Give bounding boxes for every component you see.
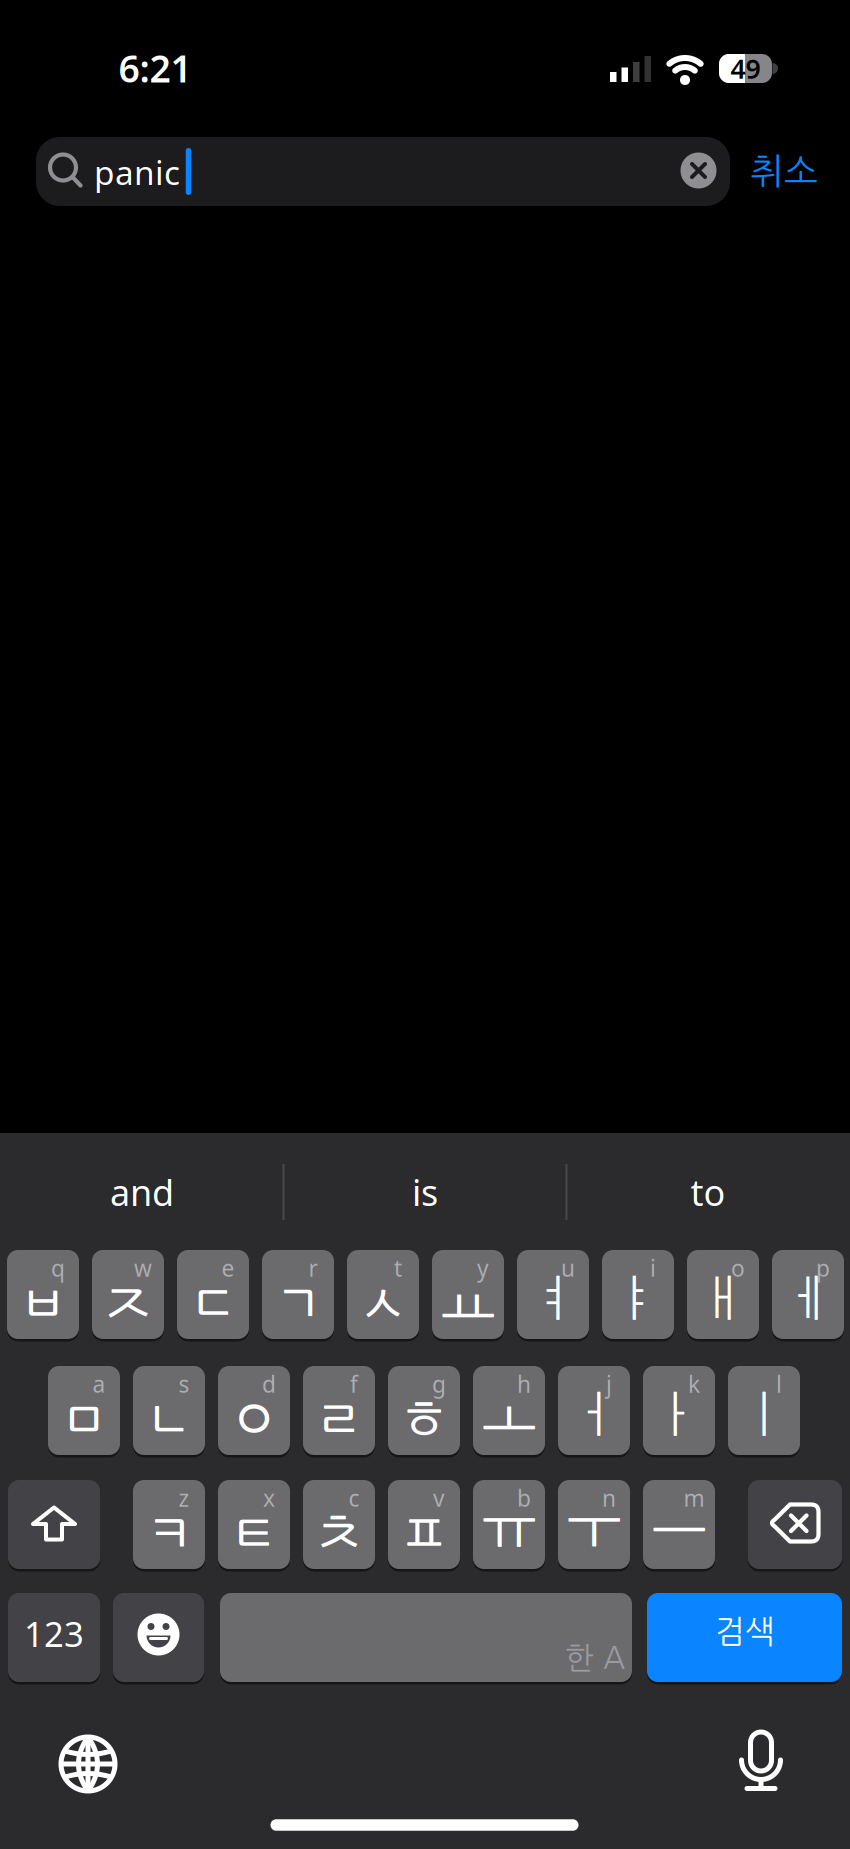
- button[interactable]: ㅎ: [388, 1366, 460, 1455]
- staticText: o: [731, 1253, 745, 1283]
- staticText: u: [561, 1253, 575, 1283]
- staticText: ㅍ: [396, 1502, 452, 1562]
- button[interactable]: ㅓ: [558, 1366, 630, 1455]
- staticText: ㅡ: [651, 1497, 707, 1557]
- staticText: 검색: [714, 1615, 774, 1647]
- button[interactable]: ㅗ: [473, 1366, 545, 1455]
- staticText: ㅠ: [481, 1495, 537, 1555]
- staticText: 한 A: [565, 1643, 625, 1673]
- button[interactable]: Shift: [8, 1480, 100, 1569]
- button[interactable]: is: [290, 1152, 560, 1232]
- staticText: ㅔ: [785, 1274, 830, 1322]
- staticText: ㅂ: [15, 1272, 71, 1332]
- staticText: ㅗ: [481, 1384, 537, 1444]
- staticText: m: [683, 1483, 704, 1513]
- button[interactable]: ㅐ: [687, 1250, 759, 1339]
- button[interactable]: ㅇ: [218, 1366, 290, 1455]
- button[interactable]: ㅏ: [643, 1366, 715, 1455]
- button[interactable]: and: [7, 1152, 277, 1232]
- staticText: q: [51, 1253, 65, 1283]
- staticText: panic: [94, 150, 180, 194]
- staticText: ㅣ: [741, 1390, 786, 1438]
- staticText: ㅏ: [656, 1390, 701, 1438]
- staticText: k: [688, 1369, 700, 1399]
- button[interactable]: ㄴ: [133, 1366, 205, 1455]
- staticText: ㄴ: [141, 1388, 197, 1448]
- button[interactable]: ㅈ: [92, 1250, 164, 1339]
- staticText: l: [776, 1369, 782, 1399]
- button[interactable]: ㅍ: [388, 1480, 460, 1569]
- button[interactable]: ㄱ: [262, 1250, 334, 1339]
- button[interactable]: Emoji: [113, 1593, 204, 1682]
- staticText: ㅅ: [355, 1272, 411, 1332]
- staticText: i: [650, 1253, 656, 1283]
- staticText: ㅎ: [396, 1388, 452, 1448]
- staticText: d: [262, 1369, 276, 1399]
- staticText: ㅈ: [100, 1272, 156, 1332]
- button[interactable]: ㅊ: [303, 1480, 375, 1569]
- button[interactable]: ㅑ: [602, 1250, 674, 1339]
- staticText: z: [178, 1483, 189, 1513]
- button[interactable]: ㅣ: [728, 1366, 800, 1455]
- button[interactable]: ㅌ: [218, 1480, 290, 1569]
- button[interactable]: Space: [220, 1593, 632, 1682]
- staticText: ㅕ: [530, 1274, 575, 1322]
- button[interactable]: ㄹ: [303, 1366, 375, 1455]
- button[interactable]: 검색: [647, 1593, 842, 1682]
- staticText: t: [394, 1253, 402, 1283]
- staticText: f: [350, 1369, 358, 1399]
- staticText: b: [517, 1483, 531, 1513]
- staticText: 6:21: [118, 43, 191, 93]
- staticText: ㄱ: [270, 1272, 326, 1332]
- staticText: j: [606, 1369, 612, 1399]
- staticText: ㄹ: [311, 1388, 367, 1448]
- staticText: h: [517, 1369, 531, 1399]
- button[interactable]: ㅋ: [133, 1480, 205, 1569]
- staticText: r: [308, 1253, 317, 1283]
- staticText: x: [263, 1483, 275, 1513]
- staticText: ㅁ: [56, 1388, 112, 1448]
- button[interactable]: ㅅ: [347, 1250, 419, 1339]
- button[interactable]: ㅕ: [517, 1250, 589, 1339]
- staticText: ㅑ: [615, 1274, 660, 1322]
- staticText: ㅋ: [141, 1502, 197, 1562]
- button[interactable]: to: [573, 1152, 843, 1232]
- button[interactable]: 취소: [709, 137, 850, 206]
- button[interactable]: ㅁ: [48, 1366, 120, 1455]
- staticText: to: [690, 1168, 725, 1216]
- button[interactable]: ㅜ: [558, 1480, 630, 1569]
- staticText: g: [432, 1369, 446, 1399]
- staticText: 49: [730, 51, 760, 86]
- staticText: ㅌ: [226, 1502, 282, 1562]
- staticText: c: [348, 1483, 359, 1513]
- staticText: ㅊ: [311, 1502, 367, 1562]
- staticText: w: [134, 1253, 152, 1283]
- staticText: v: [433, 1483, 445, 1513]
- staticText: ㅓ: [571, 1390, 616, 1438]
- staticText: ㅐ: [700, 1274, 745, 1322]
- button[interactable]: Dictation: [728, 1729, 794, 1795]
- button[interactable]: Delete: [748, 1480, 842, 1569]
- button[interactable]: ㅡ: [643, 1480, 715, 1569]
- staticText: s: [178, 1369, 189, 1399]
- staticText: is: [412, 1168, 438, 1216]
- staticText: y: [477, 1253, 489, 1283]
- button[interactable]: ㅠ: [473, 1480, 545, 1569]
- staticText: ㅜ: [566, 1495, 622, 1555]
- staticText: ㄷ: [185, 1272, 241, 1332]
- button[interactable]: Clear text: [680, 152, 716, 188]
- staticText: e: [221, 1253, 234, 1283]
- staticText: a: [92, 1369, 105, 1399]
- staticText: 취소: [750, 153, 818, 189]
- staticText: n: [602, 1483, 616, 1513]
- staticText: and: [110, 1168, 174, 1216]
- button[interactable]: Next keyboard: [55, 1731, 121, 1797]
- button[interactable]: ㄷ: [177, 1250, 249, 1339]
- button[interactable]: ㅂ: [7, 1250, 79, 1339]
- button[interactable]: 123: [8, 1593, 100, 1682]
- staticText: ㅛ: [440, 1272, 496, 1332]
- button[interactable]: ㅛ: [432, 1250, 504, 1339]
- button[interactable]: ㅔ: [772, 1250, 844, 1339]
- staticText: p: [816, 1253, 830, 1283]
- staticText: 123: [24, 1610, 84, 1656]
